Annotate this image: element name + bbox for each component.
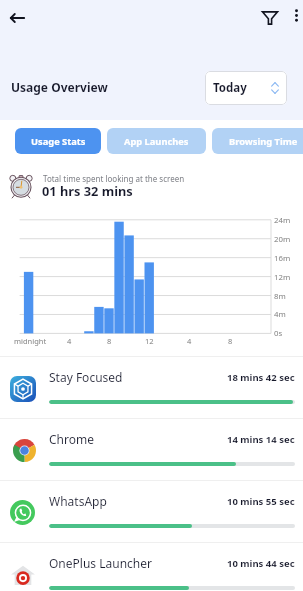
staticText: 4 <box>67 336 72 346</box>
staticText: 8 <box>107 336 112 346</box>
button[interactable]: Back <box>2 3 32 33</box>
staticText: 18 mins 42 sec <box>227 371 295 384</box>
staticText: 10 mins 55 sec <box>227 495 295 508</box>
button[interactable]: Stay Focused <box>0 357 303 418</box>
staticText: WhatsApp <box>49 493 107 509</box>
button[interactable]: Chrome <box>0 419 303 480</box>
staticText: Usage Overview <box>11 79 108 95</box>
staticText: 12 <box>145 336 154 346</box>
button[interactable]: OnePlus Launcher <box>0 543 303 591</box>
button[interactable]: Usage Stats <box>15 128 101 154</box>
button[interactable]: WhatsApp <box>0 481 303 542</box>
staticText: 01 hrs 32 mins <box>42 182 133 199</box>
staticText: App Launches <box>124 135 189 148</box>
button[interactable]: Browsing Time <box>212 128 303 154</box>
staticText: midnight <box>14 336 47 346</box>
staticText: Total time spent looking at the screen <box>43 173 185 184</box>
staticText: 24m <box>274 215 291 226</box>
staticText: Browsing Time <box>229 135 298 148</box>
staticText: Usage Stats <box>31 135 86 148</box>
staticText: Stay Focused <box>49 369 123 385</box>
staticText: OnePlus Launcher <box>49 555 152 571</box>
button[interactable]: App Launches <box>107 128 206 154</box>
button[interactable]: Today <box>205 71 287 105</box>
staticText: Chrome <box>49 431 94 447</box>
staticText: 0s <box>274 328 283 339</box>
button[interactable]: Filter <box>257 5 282 30</box>
staticText: 4 <box>187 336 192 346</box>
staticText: 14 mins 14 sec <box>227 433 295 446</box>
staticText: 20m <box>274 234 291 245</box>
staticText: 4m <box>274 309 286 320</box>
staticText: 10 mins 44 sec <box>227 557 295 570</box>
staticText: Today <box>213 80 247 96</box>
staticText: 8 <box>228 336 233 346</box>
staticText: 16m <box>274 253 291 264</box>
staticText: 12m <box>274 272 291 283</box>
button[interactable]: More options <box>286 5 303 26</box>
staticText: 8m <box>274 291 286 302</box>
